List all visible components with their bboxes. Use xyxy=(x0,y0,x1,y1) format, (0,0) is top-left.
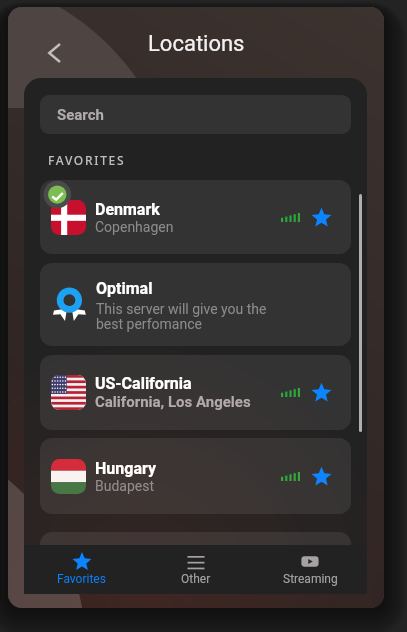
button[interactable] xyxy=(40,532,351,594)
staticText: Hungary xyxy=(95,459,156,478)
staticText: Search xyxy=(57,106,104,124)
staticText: California, Los Angeles xyxy=(95,393,251,411)
staticText: FAVORITES xyxy=(48,152,126,168)
button[interactable]: Optimal xyxy=(40,263,351,346)
button[interactable]: Favorites xyxy=(24,545,139,594)
button[interactable]: Other xyxy=(139,545,253,594)
staticText: Budapest xyxy=(95,478,155,494)
staticText: This server will give you the best perfo… xyxy=(96,301,267,333)
button[interactable]: Back xyxy=(36,35,72,71)
staticText: Favorites xyxy=(57,572,106,586)
button[interactable]: Denmark xyxy=(40,180,351,254)
staticText: Copenhagen xyxy=(95,219,174,235)
staticText: US-California xyxy=(95,374,192,393)
staticText: Denmark xyxy=(95,200,160,219)
staticText: Locations xyxy=(148,31,245,57)
staticText: Optimal xyxy=(96,279,153,298)
staticText: Streaming xyxy=(283,572,338,586)
staticText: Other xyxy=(181,572,211,586)
button[interactable]: Streaming xyxy=(253,545,367,594)
button[interactable]: Search xyxy=(40,95,351,134)
button[interactable]: US-California xyxy=(40,355,351,430)
button[interactable]: Hungary xyxy=(40,438,351,514)
